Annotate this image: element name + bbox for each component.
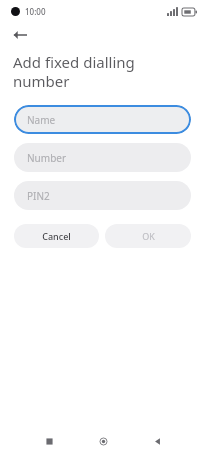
staticText: Cancel xyxy=(42,230,71,242)
staticText: 10:00 xyxy=(25,6,46,17)
button[interactable]: Home xyxy=(91,429,115,453)
staticText: Add fixed dialling number xyxy=(13,52,135,91)
staticText: PIN2 xyxy=(27,189,50,203)
button[interactable]: Back xyxy=(7,22,33,48)
staticText: Name xyxy=(27,113,56,127)
button[interactable]: Recents xyxy=(37,429,61,453)
button[interactable]: PIN2 xyxy=(14,181,191,210)
staticText: OK xyxy=(142,230,155,242)
staticText: Number xyxy=(27,151,67,165)
button[interactable]: Number xyxy=(14,143,191,172)
button[interactable]: Cancel xyxy=(14,224,99,248)
button[interactable]: OK xyxy=(105,224,191,248)
button[interactable]: Name xyxy=(14,105,191,134)
button[interactable]: Back xyxy=(145,429,169,453)
